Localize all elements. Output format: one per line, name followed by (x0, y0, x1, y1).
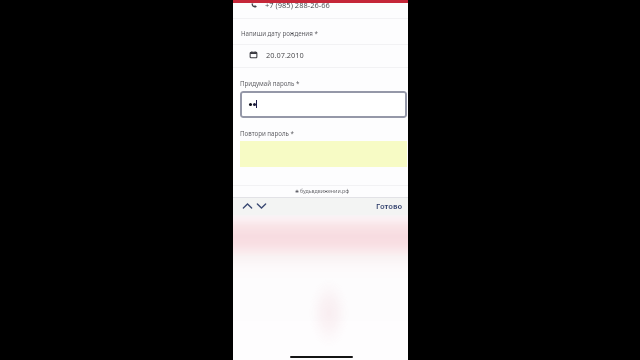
button[interactable]: Готово (376, 200, 403, 212)
staticText: будьвдвижении.рф (300, 187, 350, 194)
button[interactable]: будьвдвижении.рф (235, 185, 410, 196)
staticText: Напиши дату рождения * (241, 29, 318, 37)
button[interactable]: +7 (985) 288-26-66 (233, 3, 408, 18)
button[interactable]: Next field (255, 199, 268, 212)
staticText: 20.07.2010 (266, 50, 304, 60)
staticText: +7 (985) 288-26-66 (265, 0, 330, 10)
staticText: Готово (376, 201, 403, 211)
staticText: Придумай пароль * (240, 79, 300, 87)
button[interactable] (240, 91, 407, 118)
button[interactable]: Previous field (241, 199, 254, 212)
button[interactable]: 20.07.2010 (233, 45, 408, 67)
staticText: Повтори пароль * (240, 129, 294, 137)
